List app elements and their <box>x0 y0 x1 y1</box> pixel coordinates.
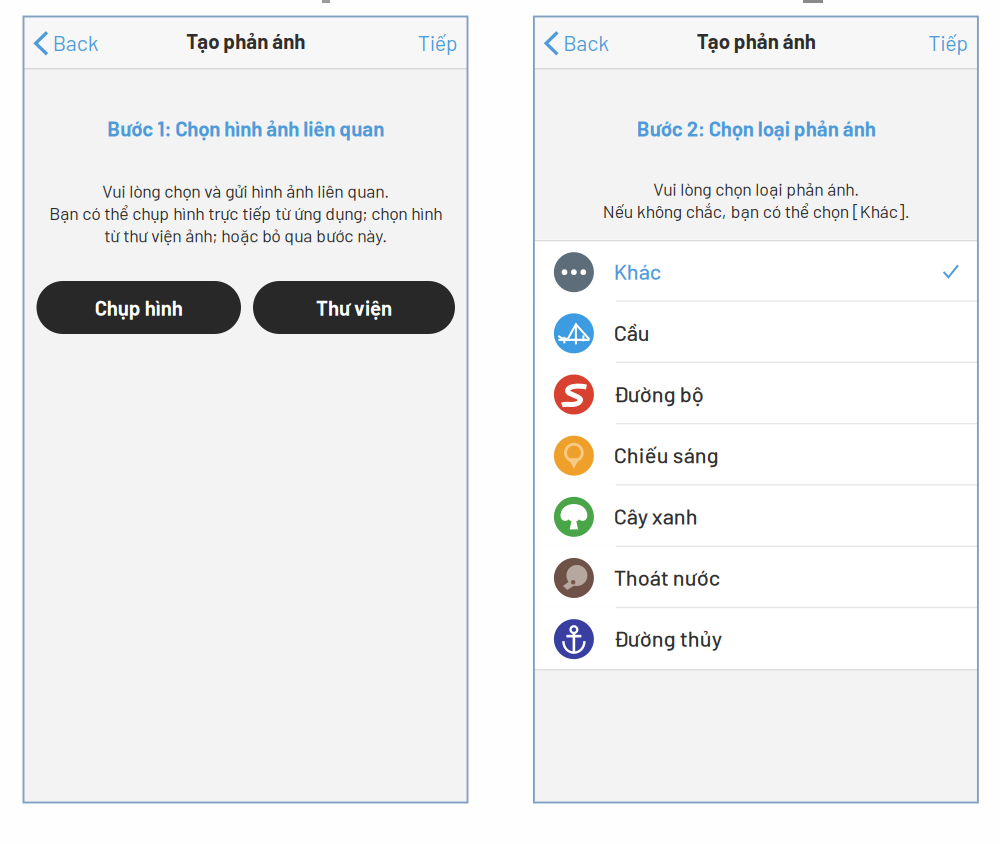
button[interactable]: Tiếp <box>888 16 978 69</box>
staticText: Thoát nước <box>613 564 719 590</box>
staticText: Bước 1: Chọn hình ảnh liên quan <box>107 116 384 140</box>
button[interactable]: Back <box>534 16 644 69</box>
button[interactable]: Cầu <box>534 301 978 362</box>
staticText: Khác <box>613 258 660 284</box>
staticText: Back <box>52 30 98 55</box>
button[interactable]: Thư viện <box>253 281 455 334</box>
staticText: Vui lòng chọn loại phản ánh. Nếu không c… <box>602 178 909 221</box>
staticText: Cây xanh <box>613 503 697 529</box>
button[interactable]: Cây xanh <box>534 484 978 545</box>
button[interactable]: Đường thủy <box>534 607 978 668</box>
staticText: Chụp hình <box>95 295 183 320</box>
staticText: Cầu <box>613 319 649 345</box>
staticText: Đường thủy <box>613 625 721 651</box>
button[interactable]: Tiếp <box>377 16 467 69</box>
staticText: Tiếp <box>928 30 968 55</box>
button[interactable]: Chụp hình <box>36 281 241 334</box>
button[interactable]: Thoát nước <box>534 545 978 607</box>
button[interactable]: Khác <box>534 240 978 301</box>
button[interactable]: Chiếu sáng <box>534 423 978 484</box>
button[interactable]: Đường bộ <box>534 362 978 423</box>
staticText: Thư viện <box>316 295 392 320</box>
staticText: Tạo phản ánh <box>696 28 815 53</box>
staticText: Back <box>563 30 609 55</box>
staticText: Vui lòng chọn và gửi hình ảnh liên quan.… <box>49 180 442 246</box>
staticText: Đường bộ <box>613 380 703 406</box>
staticText: Tạo phản ánh <box>186 28 305 53</box>
staticText: Bước 2: Chọn loại phản ánh <box>636 116 875 140</box>
staticText: Tiếp <box>417 30 457 55</box>
button[interactable]: Back <box>23 16 133 69</box>
staticText: Chiếu sáng <box>613 442 718 468</box>
